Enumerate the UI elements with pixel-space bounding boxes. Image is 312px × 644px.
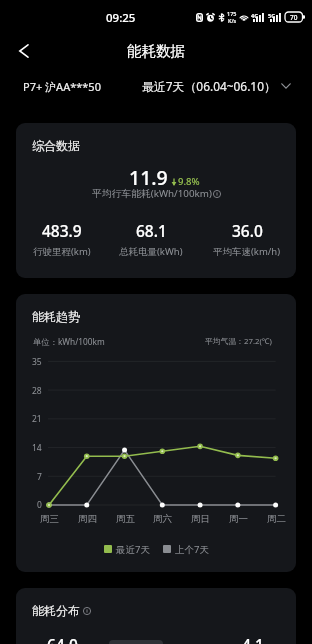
staticText: 总耗电量(kWh): [119, 245, 183, 258]
staticText: 最近7天（06.04~06.10）: [142, 78, 276, 94]
staticText: 上个7天: [175, 543, 209, 556]
button[interactable]: P7+ 沪AA***50: [23, 74, 101, 98]
staticText: 周日: [191, 513, 210, 525]
staticText: 能耗趋势: [32, 309, 80, 324]
staticText: 行驶里程(km): [33, 245, 91, 258]
staticText: 单位：kWh/100km: [33, 336, 105, 347]
staticText: K/s: [228, 17, 237, 24]
staticText: 平均气温：27.2(℃): [205, 336, 272, 347]
staticText: 14: [32, 442, 42, 454]
staticText: 能耗数据: [127, 42, 185, 60]
staticText: 周四: [78, 513, 97, 525]
staticText: P7+ 沪AA***50: [23, 79, 101, 94]
staticText: 21: [32, 413, 42, 425]
staticText: 周六: [153, 513, 172, 525]
staticText: 9.8%: [178, 175, 200, 188]
staticText: 483.9: [42, 220, 82, 241]
staticText: 周三: [40, 513, 59, 525]
staticText: 5G: [268, 12, 276, 19]
staticText: 4G: [251, 12, 259, 19]
staticText: 35: [32, 356, 42, 368]
staticText: 175: [227, 10, 237, 17]
staticText: 周一: [229, 513, 248, 525]
staticText: 64.0: [47, 634, 78, 644]
staticText: 综合数据: [32, 138, 80, 153]
staticText: 最近7天: [116, 543, 150, 556]
staticText: 09:25: [106, 10, 136, 26]
staticText: 周二: [267, 513, 286, 525]
staticText: 28: [32, 385, 42, 397]
staticText: 7: [37, 471, 42, 483]
staticText: 平均行车能耗(kWh/100km): [92, 187, 212, 200]
staticText: 0: [37, 499, 42, 511]
button[interactable]: 最近7天（06.04~06.10）: [142, 74, 291, 98]
staticText: 周五: [116, 513, 135, 525]
staticText: 36.0: [232, 220, 263, 241]
staticText: 能耗分布: [32, 603, 80, 618]
staticText: 平均车速(km/h): [213, 245, 281, 258]
staticText: 68.1: [136, 220, 167, 241]
button[interactable]: Back: [6, 36, 40, 66]
staticText: 11.9: [129, 164, 168, 191]
staticText: 70: [290, 13, 298, 22]
staticText: 4.1: [242, 634, 264, 644]
